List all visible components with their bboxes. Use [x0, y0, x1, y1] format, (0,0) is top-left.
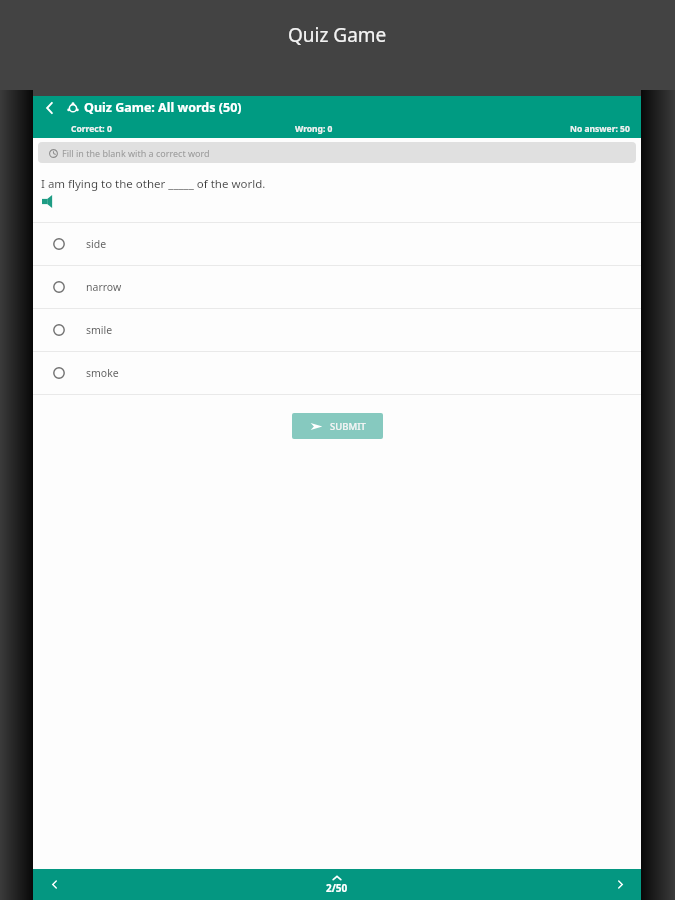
staticText: Quiz Game: [288, 22, 387, 48]
staticText: Quiz Game: All words (50): [84, 99, 242, 116]
staticText: smile: [86, 323, 113, 337]
staticText: Wrong: 0: [295, 123, 333, 135]
staticText: Correct: 0: [71, 123, 112, 135]
staticText: narrow: [86, 280, 122, 294]
staticText: 2/50: [326, 881, 348, 895]
button[interactable]: Next: [599, 869, 641, 900]
button[interactable]: Back: [33, 96, 67, 119]
staticText: smoke: [86, 366, 119, 380]
button[interactable]: side: [33, 223, 641, 265]
button[interactable]: SUBMIT: [292, 413, 383, 439]
staticText: SUBMIT: [330, 420, 366, 433]
button[interactable]: Play sound: [42, 195, 55, 208]
button[interactable]: 2/50: [75, 869, 599, 900]
button[interactable]: smile: [33, 309, 641, 351]
button[interactable]: narrow: [33, 266, 641, 308]
staticText: side: [86, 237, 107, 251]
button[interactable]: Previous: [33, 869, 75, 900]
button[interactable]: smoke: [33, 352, 641, 394]
staticText: Fill in the blank with a correct word: [62, 147, 210, 159]
staticText: I am flying to the other _____ of the wo…: [41, 176, 266, 192]
staticText: No answer: 50: [570, 123, 630, 135]
